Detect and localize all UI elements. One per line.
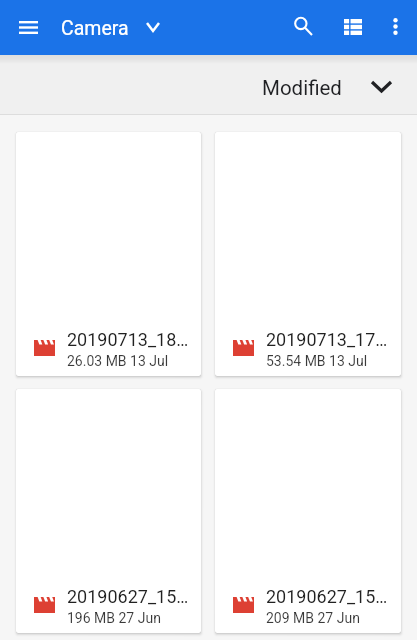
button[interactable]: Open navigation drawer [6, 5, 51, 50]
button[interactable]: Change view [329, 3, 377, 51]
staticText: Camera [61, 17, 129, 40]
button[interactable]: 20190627_15… [16, 389, 201, 633]
button[interactable]: Modified [242, 55, 417, 115]
button[interactable]: 20190627_15… [215, 389, 401, 633]
button[interactable]: Camera [61, 1, 159, 56]
staticText: 20190713_18… [67, 329, 188, 350]
button[interactable]: More options [373, 4, 417, 48]
staticText: 196 MB 27 Jun [67, 610, 161, 626]
staticText: 20190627_15… [266, 586, 388, 607]
staticText: 20190627_15… [67, 586, 188, 607]
button[interactable]: 20190713_17… [215, 132, 401, 376]
staticText: Modified [262, 76, 342, 100]
staticText: 53.54 MB 13 Jul [266, 353, 368, 369]
staticText: 209 MB 27 Jun [266, 610, 360, 626]
staticText: 20190713_17… [266, 329, 388, 350]
button[interactable]: Search [279, 2, 327, 50]
button[interactable]: 20190713_18… [16, 132, 201, 376]
staticText: 26.03 MB 13 Jul [67, 353, 169, 369]
